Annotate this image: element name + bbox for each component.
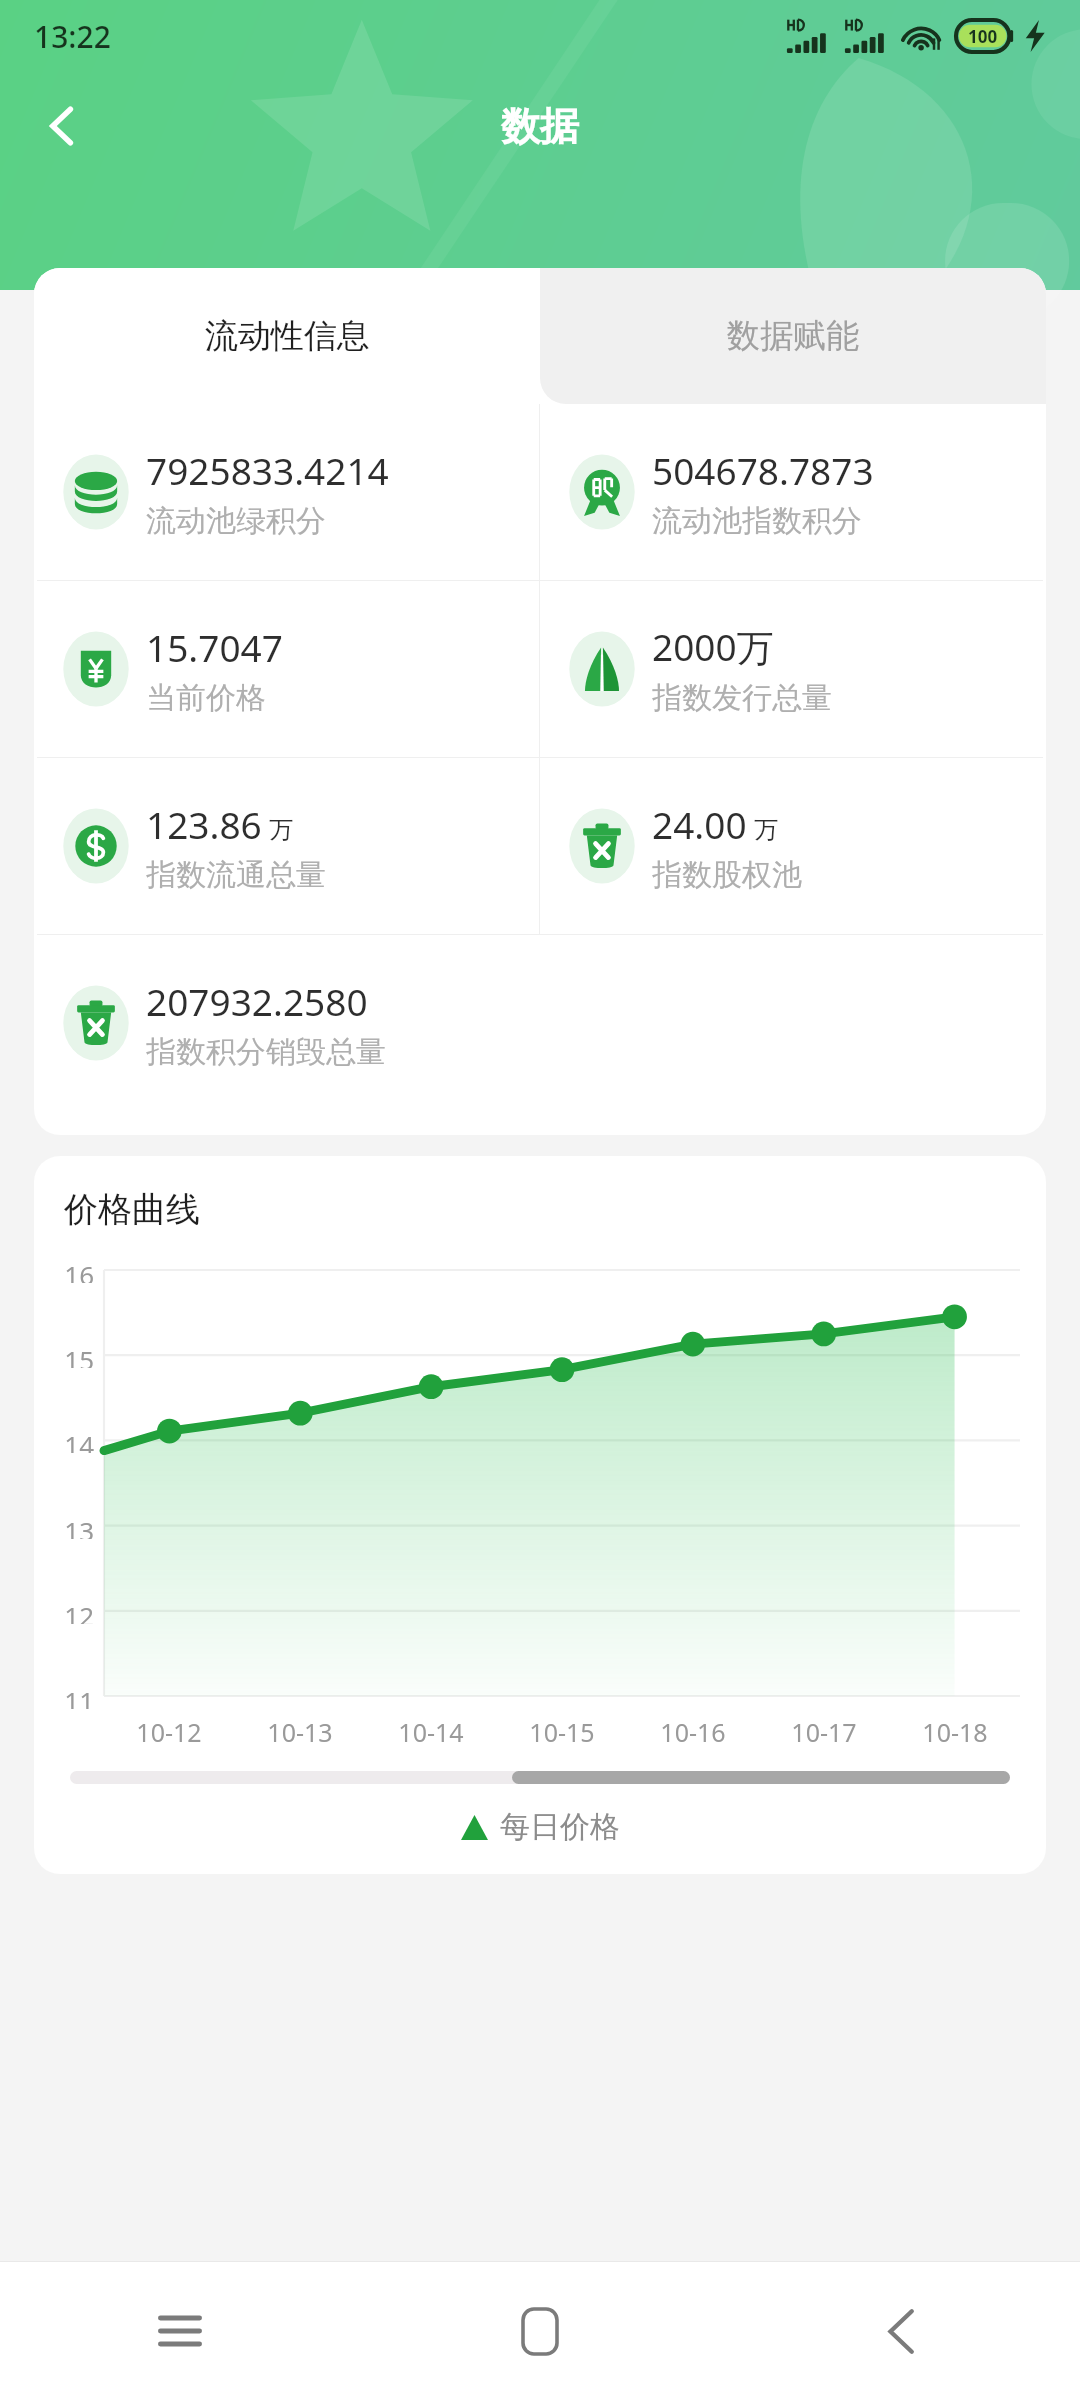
staticText: 流动池绿积分 [146, 502, 326, 540]
button[interactable]: 123.86 [34, 758, 539, 934]
staticText: 10-18 [922, 1715, 988, 1749]
staticText: 123.86 [146, 799, 262, 849]
staticText: 12 [64, 1598, 94, 1624]
button[interactable]: Back [18, 82, 106, 170]
button[interactable]: 2000万 [540, 581, 1046, 757]
staticText: 数据 [501, 102, 579, 151]
staticText: 13:22 [34, 16, 111, 57]
staticText: 7925833.4214 [146, 445, 389, 495]
button[interactable]: Back [720, 2262, 1080, 2400]
button[interactable]: Recent apps [0, 2262, 360, 2400]
staticText: 指数积分销毁总量 [146, 1033, 386, 1071]
staticText: 指数股权池 [652, 856, 802, 894]
staticText: 10-15 [529, 1715, 595, 1749]
button[interactable]: 数据赋能 [540, 268, 1046, 404]
staticText: 每日价格 [500, 1808, 620, 1846]
button[interactable]: 流动性信息 [34, 268, 540, 404]
staticText: 10-12 [136, 1715, 202, 1749]
button[interactable]: Home [360, 2262, 720, 2400]
staticText: 11 [64, 1683, 94, 1709]
staticText: 当前价格 [146, 679, 266, 717]
staticText: 15 [64, 1342, 94, 1368]
button[interactable]: 7925833.4214 [34, 404, 539, 580]
button[interactable]: 24.00 [540, 758, 1046, 934]
staticText: 2000万 [652, 621, 774, 672]
staticText: 24.00 [652, 799, 747, 849]
staticText: 100 [968, 25, 998, 48]
staticText: 指数流通总量 [146, 856, 326, 894]
staticText: 万 [754, 815, 778, 845]
staticText: 207932.2580 [146, 976, 368, 1026]
staticText: 10-14 [398, 1715, 464, 1749]
staticText: 15.7047 [146, 622, 283, 672]
button[interactable]: 15.7047 [34, 581, 539, 757]
staticText: 数据赋能 [727, 315, 859, 357]
staticText: 万 [269, 815, 293, 845]
staticText: 504678.7873 [652, 445, 874, 495]
staticText: 价格曲线 [64, 1188, 200, 1231]
staticText: 流动性信息 [205, 315, 370, 357]
button[interactable]: 504678.7873 [540, 404, 1046, 580]
staticText: 10-16 [660, 1715, 726, 1749]
staticText: 指数发行总量 [652, 679, 832, 717]
staticText: 10-13 [267, 1715, 333, 1749]
staticText: 14 [64, 1427, 94, 1453]
staticText: 16 [64, 1257, 94, 1283]
staticText: 流动池指数积分 [652, 502, 862, 540]
button[interactable]: 207932.2580 [34, 935, 540, 1111]
staticText: 13 [64, 1513, 94, 1539]
staticText: 10-17 [791, 1715, 857, 1749]
